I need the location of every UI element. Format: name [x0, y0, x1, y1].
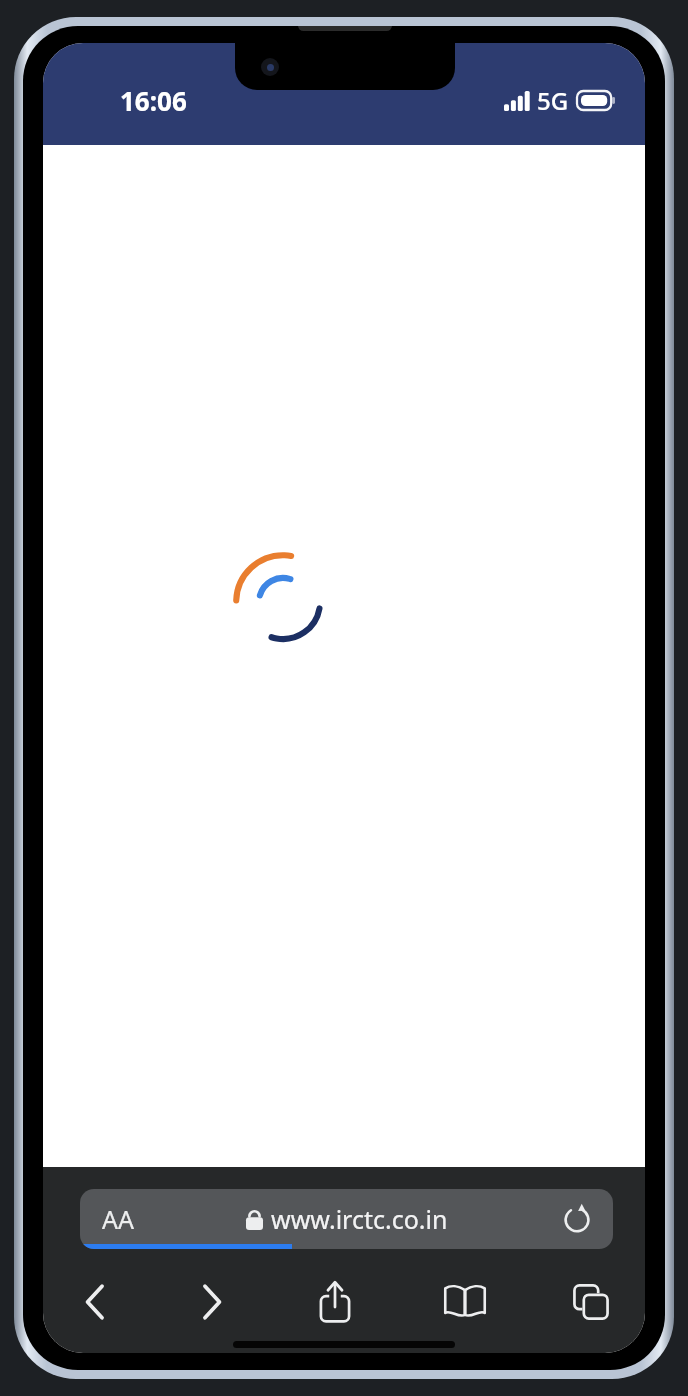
button[interactable]: Share [306, 1273, 364, 1331]
staticText: www.irctc.co.in [271, 1202, 448, 1236]
button[interactable]: Back [66, 1273, 124, 1331]
staticText: 16:06 [120, 83, 187, 118]
button[interactable]: AA [80, 1189, 613, 1249]
staticText: 5G [537, 84, 569, 117]
button[interactable]: Forward [183, 1273, 241, 1331]
button[interactable]: AA [102, 1202, 134, 1236]
button[interactable]: Reload [555, 1197, 599, 1241]
button[interactable]: Bookmarks [436, 1273, 494, 1331]
button[interactable]: Tabs [562, 1273, 620, 1331]
